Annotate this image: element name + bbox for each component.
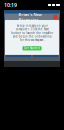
button[interactable]	[33, 54, 58, 57]
staticText: Get Started	[24, 46, 40, 50]
button[interactable]	[33, 26, 58, 29]
button[interactable]	[6, 54, 31, 57]
staticText: Setup is ready on your computer. Click t…	[11, 24, 53, 42]
button[interactable]	[6, 33, 31, 36]
button[interactable]	[6, 47, 31, 50]
button[interactable]	[33, 47, 58, 50]
button[interactable]	[33, 33, 58, 36]
staticText: Brian's New Blueprint	[18, 12, 41, 22]
button[interactable]	[33, 40, 58, 43]
button[interactable]: Get Started	[22, 46, 41, 50]
button[interactable]	[6, 26, 31, 29]
button[interactable]: Close	[53, 15, 57, 19]
staticText: 10:19	[4, 1, 17, 9]
button[interactable]	[6, 40, 31, 43]
